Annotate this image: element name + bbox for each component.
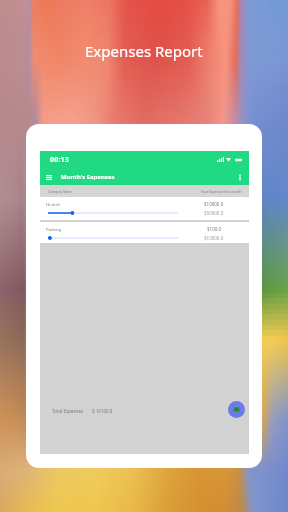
staticText: Total Expenses (52, 408, 84, 414)
staticText: $ 10100.0 (92, 408, 113, 414)
button[interactable]: Parking (40, 222, 249, 243)
staticText: $10000.0 (204, 201, 224, 207)
button[interactable]: Hi-tech (40, 197, 249, 220)
staticText: 00:13 (50, 155, 69, 165)
staticText: Parking (46, 227, 62, 233)
button[interactable]: More options (234, 171, 246, 183)
staticText: $50000.0 (204, 210, 224, 216)
staticText: Hi-tech (46, 202, 61, 208)
staticText: Month's Expenses (61, 173, 115, 181)
staticText: Your Expenses this month (201, 189, 242, 193)
button[interactable]: Add expense (228, 401, 245, 418)
staticText: $10000.0 (204, 235, 224, 241)
button[interactable]: Menu (42, 170, 56, 184)
staticText: Category Name (48, 189, 73, 193)
staticText: Expenses Report (85, 41, 203, 61)
staticText: $100.0 (207, 226, 222, 232)
